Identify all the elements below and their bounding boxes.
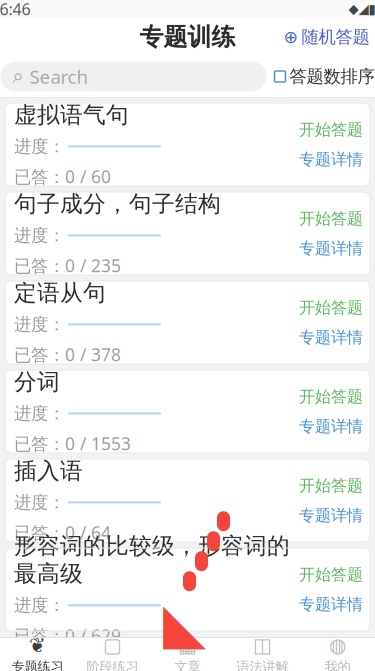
staticText: 已答：0 / 1553 [14, 432, 131, 455]
button[interactable]: ◍ [300, 638, 375, 671]
staticText: 已答：0 / 60 [14, 165, 111, 188]
button[interactable]: 形容词的比较级，形容词的最高级 [5, 548, 370, 631]
staticText: 进度： [14, 492, 65, 513]
button[interactable]: 句子成分，句子结构 [5, 192, 370, 275]
staticText: 进度： [14, 225, 65, 246]
staticText: 专题详情 [299, 149, 363, 169]
button[interactable]: 专题详情 [299, 594, 363, 614]
staticText: 已答：0 / 235 [14, 254, 121, 277]
staticText: ❦ [29, 634, 46, 657]
staticText: 进度： [14, 314, 65, 335]
button[interactable]: 专题详情 [299, 327, 363, 347]
staticText: 分词 [14, 368, 60, 396]
button[interactable]: 定语从句 [5, 281, 370, 364]
button[interactable]: 开始答题 [299, 120, 363, 139]
button[interactable]: 开始答题 [299, 298, 363, 317]
staticText: ⌕ [12, 67, 23, 86]
staticText: 文章 [174, 659, 200, 671]
staticText: 开始答题 [299, 476, 363, 495]
button[interactable]: 开始答题 [299, 476, 363, 495]
button[interactable]: 专题详情 [299, 505, 363, 525]
staticText: 专题详情 [299, 238, 363, 258]
staticText: 进度： [14, 403, 65, 424]
staticText: 进度： [14, 595, 65, 616]
staticText: 我的 [324, 659, 350, 671]
button[interactable]: 插入语 [5, 459, 370, 542]
staticText: ⊕ [283, 27, 298, 47]
staticText: 随机答题 [301, 26, 369, 48]
staticText: ◆◢▮ [348, 1, 375, 16]
staticText: 已答：0 / 629 [14, 624, 121, 647]
staticText: ▢ [103, 634, 122, 657]
staticText: 开始答题 [299, 209, 363, 228]
button[interactable]: 专题详情 [299, 149, 363, 169]
staticText: 答题数排序 [289, 66, 374, 87]
button[interactable]: 专题详情 [299, 238, 363, 258]
staticText: 进度： [14, 136, 65, 157]
staticText: 专题详情 [299, 594, 363, 614]
button[interactable]: 开始答题 [299, 387, 363, 406]
staticText: 阶段练习 [86, 659, 138, 671]
staticText: 专题训练 [139, 22, 235, 52]
button[interactable]: 开始答题 [299, 209, 363, 228]
staticText: 6:46 [0, 0, 30, 20]
staticText: 开始答题 [299, 298, 363, 317]
staticText: 开始答题 [299, 565, 363, 584]
staticText: 开始答题 [299, 387, 363, 406]
staticText: 开始答题 [299, 120, 363, 139]
staticText: 已答：0 / 378 [14, 343, 121, 366]
staticText: ▦ [178, 634, 197, 657]
staticText: 插入语 [14, 457, 83, 485]
staticText: 形容词的比较级，形容词的最高级 [14, 532, 290, 588]
staticText: 已答：0 / 64 [14, 521, 111, 544]
staticText: 专题详情 [299, 416, 363, 436]
staticText: ◣ [163, 591, 206, 655]
button[interactable]: 开始答题 [299, 565, 363, 584]
staticText: 专题练习 [11, 659, 63, 671]
button[interactable]: ❦ [0, 638, 75, 671]
button[interactable]: ⌕ [0, 61, 266, 91]
button[interactable]: ⊕ [275, 19, 375, 55]
button[interactable]: 专题详情 [299, 416, 363, 436]
staticText: 语法讲解 [236, 659, 288, 671]
button[interactable]: 答题数排序 [274, 60, 374, 93]
staticText: 定语从句 [14, 279, 106, 307]
staticText: ◍ [329, 634, 346, 657]
staticText: 专题详情 [299, 327, 363, 347]
button[interactable]: 虚拟语气句 [5, 103, 370, 186]
staticText: 虚拟语气句 [14, 101, 129, 129]
staticText: Search [29, 64, 88, 89]
staticText: ◫ [253, 634, 272, 657]
staticText: 句子成分，句子结构 [14, 190, 221, 218]
staticText: 专题详情 [299, 505, 363, 525]
button[interactable]: ▢ [75, 638, 150, 671]
button[interactable]: ▦ [150, 638, 225, 671]
button[interactable]: 分词 [5, 370, 370, 453]
button[interactable]: ◫ [225, 638, 300, 671]
